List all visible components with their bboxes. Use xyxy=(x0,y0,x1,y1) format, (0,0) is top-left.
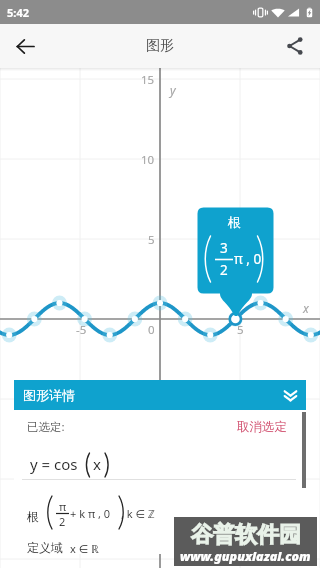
staticText: 0 xyxy=(148,322,155,338)
staticText: 2 xyxy=(220,261,228,279)
staticText: π xyxy=(59,499,67,514)
staticText: x xyxy=(303,300,309,316)
staticText: 定义域 xyxy=(27,540,63,555)
staticText: π , 0 xyxy=(234,250,262,268)
staticText: + k π , 0 xyxy=(70,506,111,521)
button[interactable]: Back xyxy=(0,24,50,68)
staticText: 2 xyxy=(59,514,66,529)
button[interactable]: Share xyxy=(270,24,320,68)
staticText: , k ∈ ℤ xyxy=(121,506,155,521)
staticText: 谷普软件园 xyxy=(191,521,301,549)
staticText: 根 xyxy=(228,214,241,230)
staticText: x xyxy=(93,454,101,474)
staticText: 5 xyxy=(237,322,244,338)
staticText: 5 xyxy=(148,232,155,248)
staticText: 根 xyxy=(27,509,39,524)
staticText: 取消选定 xyxy=(237,419,287,435)
staticText: 3 xyxy=(220,239,228,257)
staticText: 图形详情 xyxy=(23,387,75,403)
staticText: -15 xyxy=(245,552,262,568)
staticText: 5:42 xyxy=(7,5,29,20)
staticText: www.gupuxlazal.com xyxy=(180,548,311,565)
staticText: y = cos xyxy=(30,454,78,474)
staticText: y xyxy=(170,82,176,98)
staticText: -5 xyxy=(76,322,87,338)
staticText: x ∈ ℝ xyxy=(70,541,99,556)
staticText: 图形 xyxy=(146,37,174,55)
button[interactable]: 取消选定 xyxy=(226,414,298,440)
staticText: 10 xyxy=(141,152,155,168)
button[interactable]: 已选定: xyxy=(20,414,90,440)
staticText: 已选定: xyxy=(27,419,65,435)
button[interactable]: 图形详情 xyxy=(14,380,306,410)
staticText: 15 xyxy=(141,72,155,88)
